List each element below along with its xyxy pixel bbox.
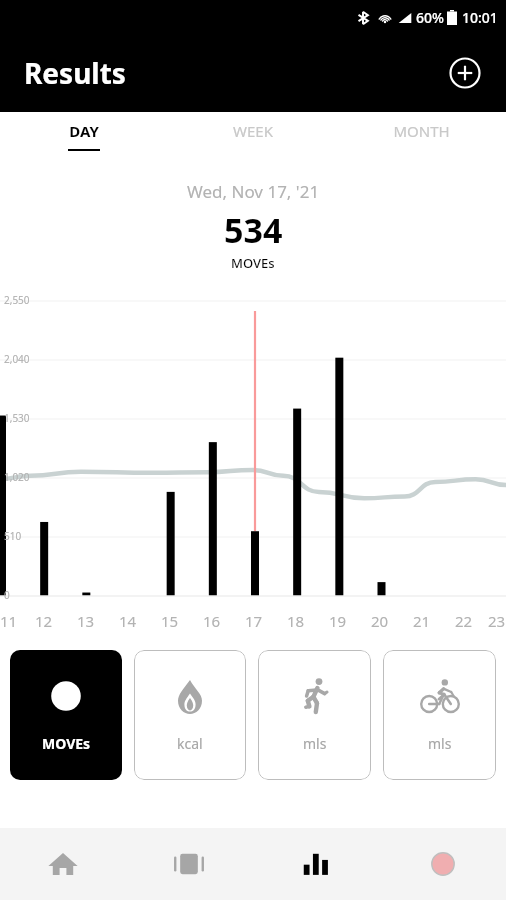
staticText: Results [24,54,126,92]
button[interactable]: kcal [134,650,246,780]
button[interactable]: DAY [0,112,168,158]
staticText: kcal [177,734,203,753]
staticText: 23 [488,611,506,631]
staticText: MONTH [393,121,450,141]
staticText: 17 [245,611,263,631]
staticText: 19 [329,611,347,631]
staticText: mls [303,734,327,753]
staticText: 20 [371,611,389,631]
button[interactable]: Add [448,56,482,90]
button[interactable]: Results [252,828,379,900]
staticText: mls [428,734,452,753]
staticText: 60% [416,8,444,27]
staticText: DAY [69,121,99,141]
staticText: 11 [0,611,18,631]
staticText: 18 [287,611,305,631]
button[interactable]: MONTH [337,112,506,158]
staticText: 534 [224,207,283,253]
staticText: 16 [203,611,221,631]
staticText: 10:01 [462,8,498,27]
button[interactable]: MOVEs [10,650,122,780]
staticText: MOVEs [231,254,275,272]
staticText: MOVEs [42,734,91,753]
button[interactable]: Home [0,828,126,900]
staticText: 22 [455,611,473,631]
staticText: 1,020 [4,470,30,484]
staticText: 15 [161,611,179,631]
button[interactable]: Record [379,828,506,900]
staticText: 2,040 [4,352,30,366]
staticText: 14 [119,611,137,631]
staticText: 1,530 [4,411,30,425]
staticText: WEEK [233,121,273,141]
staticText: 0 [4,588,10,602]
staticText: 2,550 [4,293,30,307]
staticText: Wed, Nov 17, '21 [187,180,320,203]
button[interactable]: mls [258,650,371,780]
staticText: 13 [77,611,95,631]
staticText: 510 [4,529,22,543]
staticText: 21 [413,611,431,631]
button[interactable]: mls [383,650,496,780]
button[interactable]: Cards [126,828,252,900]
button[interactable]: WEEK [168,112,337,158]
staticText: 12 [35,611,53,631]
